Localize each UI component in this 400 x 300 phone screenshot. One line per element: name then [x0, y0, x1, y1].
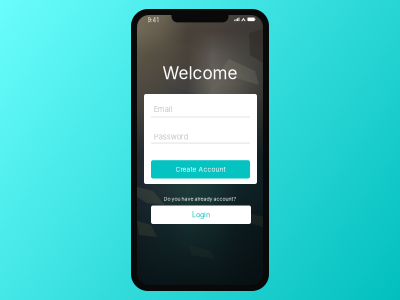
- staticText: 9:41: [148, 17, 159, 24]
- button[interactable]: Create Account: [151, 160, 250, 178]
- staticText: Password: [154, 132, 189, 141]
- staticText: Do you have already account?: [163, 196, 236, 202]
- staticText: Email: [154, 105, 173, 114]
- staticText: Welcome: [162, 63, 237, 83]
- staticText: Login: [192, 210, 210, 219]
- staticText: Create Account: [175, 165, 225, 173]
- button[interactable]: Login: [151, 205, 251, 224]
